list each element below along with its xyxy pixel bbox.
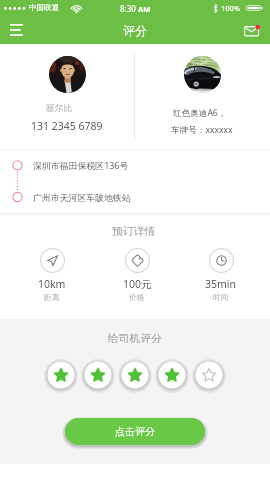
button[interactable]: 塞尔比 [0,44,134,149]
button[interactable]: Rate 3 stars [118,358,152,392]
staticText: 红色奥迪A6， [173,107,227,119]
staticText: 评分 [123,23,147,38]
staticText: AM [138,4,151,14]
staticText: 时间 [213,292,229,302]
staticText: 给司机评分 [108,332,162,346]
button[interactable]: Rate 2 stars [81,358,115,392]
staticText: 10km [38,277,66,291]
button[interactable]: Messages, 1 unread [232,16,270,44]
button[interactable]: Rate 5 stars [192,358,226,392]
staticText: 塞尔比 [46,103,73,114]
button[interactable]: 35min [195,248,247,302]
staticText: 深圳市福田保税区136号 [33,159,129,171]
button[interactable]: 100元 [111,248,163,302]
button[interactable]: Rate 1 stars [44,358,78,392]
staticText: 100% [221,3,241,13]
button[interactable]: 10km [26,248,78,302]
staticText: 8:30 [120,3,138,14]
staticText: 距离 [44,292,60,302]
staticText: 点击评分 [115,425,155,438]
staticText: 广州市天河区车陂地铁站 [33,192,131,203]
button[interactable]: 红色奥迪A6， [135,44,270,149]
staticText: 35min [205,277,237,291]
button[interactable]: 深圳市福田保税区136号 [0,150,270,213]
staticText: 预订详情 [112,225,156,239]
staticText: 价格 [129,292,145,302]
staticText: 中国联通 [29,3,59,12]
button[interactable]: Rate 4 stars [155,358,189,392]
button[interactable]: Open navigation menu [0,16,35,44]
staticText: 车牌号：xxxxxx [171,124,233,136]
button[interactable]: 点击评分 [65,418,205,445]
staticText: 131 2345 6789 [31,119,103,133]
staticText: 100元 [123,277,152,291]
